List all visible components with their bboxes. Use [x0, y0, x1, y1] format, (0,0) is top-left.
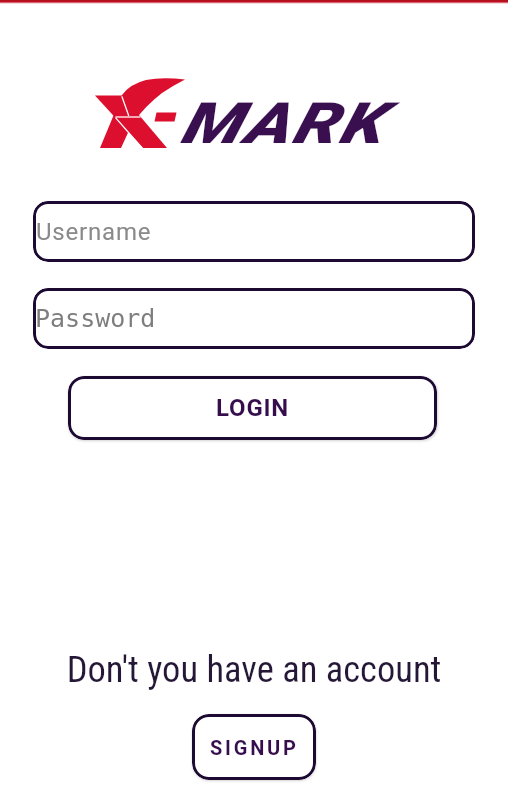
staticText: LOGIN	[216, 394, 290, 422]
staticText: Password	[35, 304, 156, 333]
staticText: Username	[36, 218, 152, 246]
staticText: MARK	[180, 90, 385, 157]
button[interactable]: LOGIN	[68, 376, 437, 440]
button[interactable]: Username	[33, 201, 475, 262]
staticText: SIGNUP	[210, 736, 299, 759]
button[interactable]: Password	[33, 288, 475, 349]
staticText: Don't you have an account	[0, 648, 508, 691]
button[interactable]: SIGNUP	[192, 714, 316, 780]
